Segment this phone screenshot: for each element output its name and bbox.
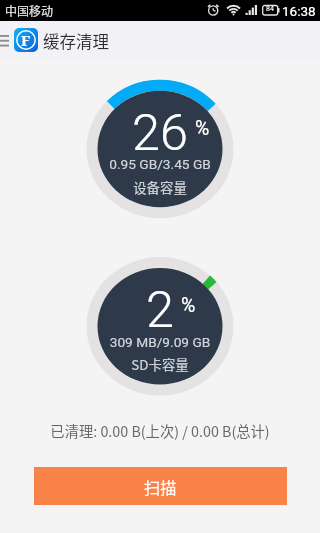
staticText: 设备容量: [0, 177, 320, 196]
staticText: 已清理: 0.00 B(上次) / 0.00 B(总计): [0, 420, 320, 441]
staticText: 26: [0, 103, 320, 162]
staticText: 扫描: [144, 475, 177, 498]
staticText: 16:38: [282, 3, 316, 19]
button[interactable]: 扫描: [34, 467, 287, 505]
staticText: 309 MB/9.09 GB: [0, 334, 320, 350]
staticText: SD卡容量: [0, 354, 320, 373]
staticText: F: [21, 30, 31, 50]
staticText: 0.95 GB/3.45 GB: [0, 156, 320, 172]
staticText: 2: [0, 280, 320, 339]
staticText: 中国移动: [5, 2, 54, 19]
staticText: 84: [266, 5, 274, 13]
staticText: 缓存清理: [43, 29, 109, 53]
staticText: %: [195, 117, 210, 140]
button[interactable]: Open navigation drawer: [0, 35, 9, 47]
staticText: %: [181, 294, 196, 317]
other: App logo: [14, 28, 38, 52]
